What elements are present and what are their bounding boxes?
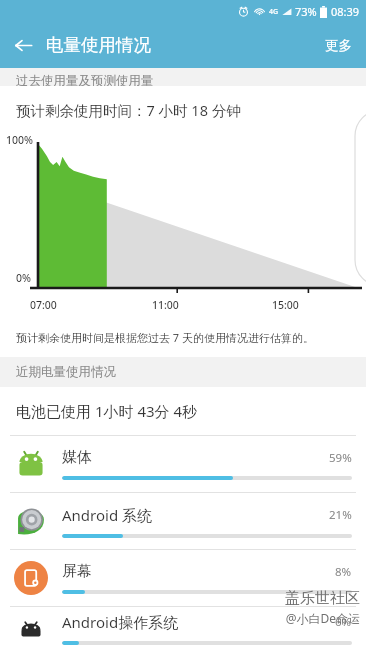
staticText: 100% <box>6 133 33 147</box>
staticText: 预计剩余使用时间是根据您过去 7 天的使用情况进行估算的。 <box>16 330 315 345</box>
staticText: 预计剩余使用时间：7 小时 18 分钟 <box>16 100 241 120</box>
staticText: @小白De命运 <box>285 610 360 626</box>
staticText: 8% <box>335 564 352 580</box>
staticText: 59% <box>329 450 352 466</box>
staticText: 屏幕 <box>62 562 335 581</box>
button[interactable]: Android 系统 <box>0 493 366 549</box>
staticText: Android 系统 <box>62 505 329 525</box>
button[interactable]: 屏幕 <box>0 550 366 606</box>
staticText: 盖乐世社区 <box>285 589 360 608</box>
staticText: 过去使用量及预测使用量 <box>16 73 154 89</box>
staticText: 更多 <box>325 37 352 54</box>
staticText: 0% <box>16 271 31 285</box>
button[interactable]: 更多 <box>311 25 366 66</box>
staticText: 4G <box>269 7 279 17</box>
staticText: 15:00 <box>272 298 299 312</box>
button[interactable]: 返回 <box>0 22 46 68</box>
staticText: 近期电量使用情况 <box>16 364 116 380</box>
staticText: 07:00 <box>30 298 57 312</box>
staticText: 11:00 <box>152 298 179 312</box>
staticText: 08:39 <box>331 4 360 19</box>
button[interactable]: 媒体 <box>0 436 366 492</box>
button[interactable]: Android操作系统 <box>0 607 366 650</box>
staticText: 电量使用情况 <box>46 34 151 56</box>
staticText: 21% <box>329 507 352 523</box>
staticText: 电池已使用 1小时 43分 4秒 <box>16 401 198 421</box>
staticText: 6% <box>335 614 352 630</box>
staticText: Android操作系统 <box>62 612 335 632</box>
staticText: 73% <box>295 4 317 19</box>
staticText: 媒体 <box>62 448 329 467</box>
